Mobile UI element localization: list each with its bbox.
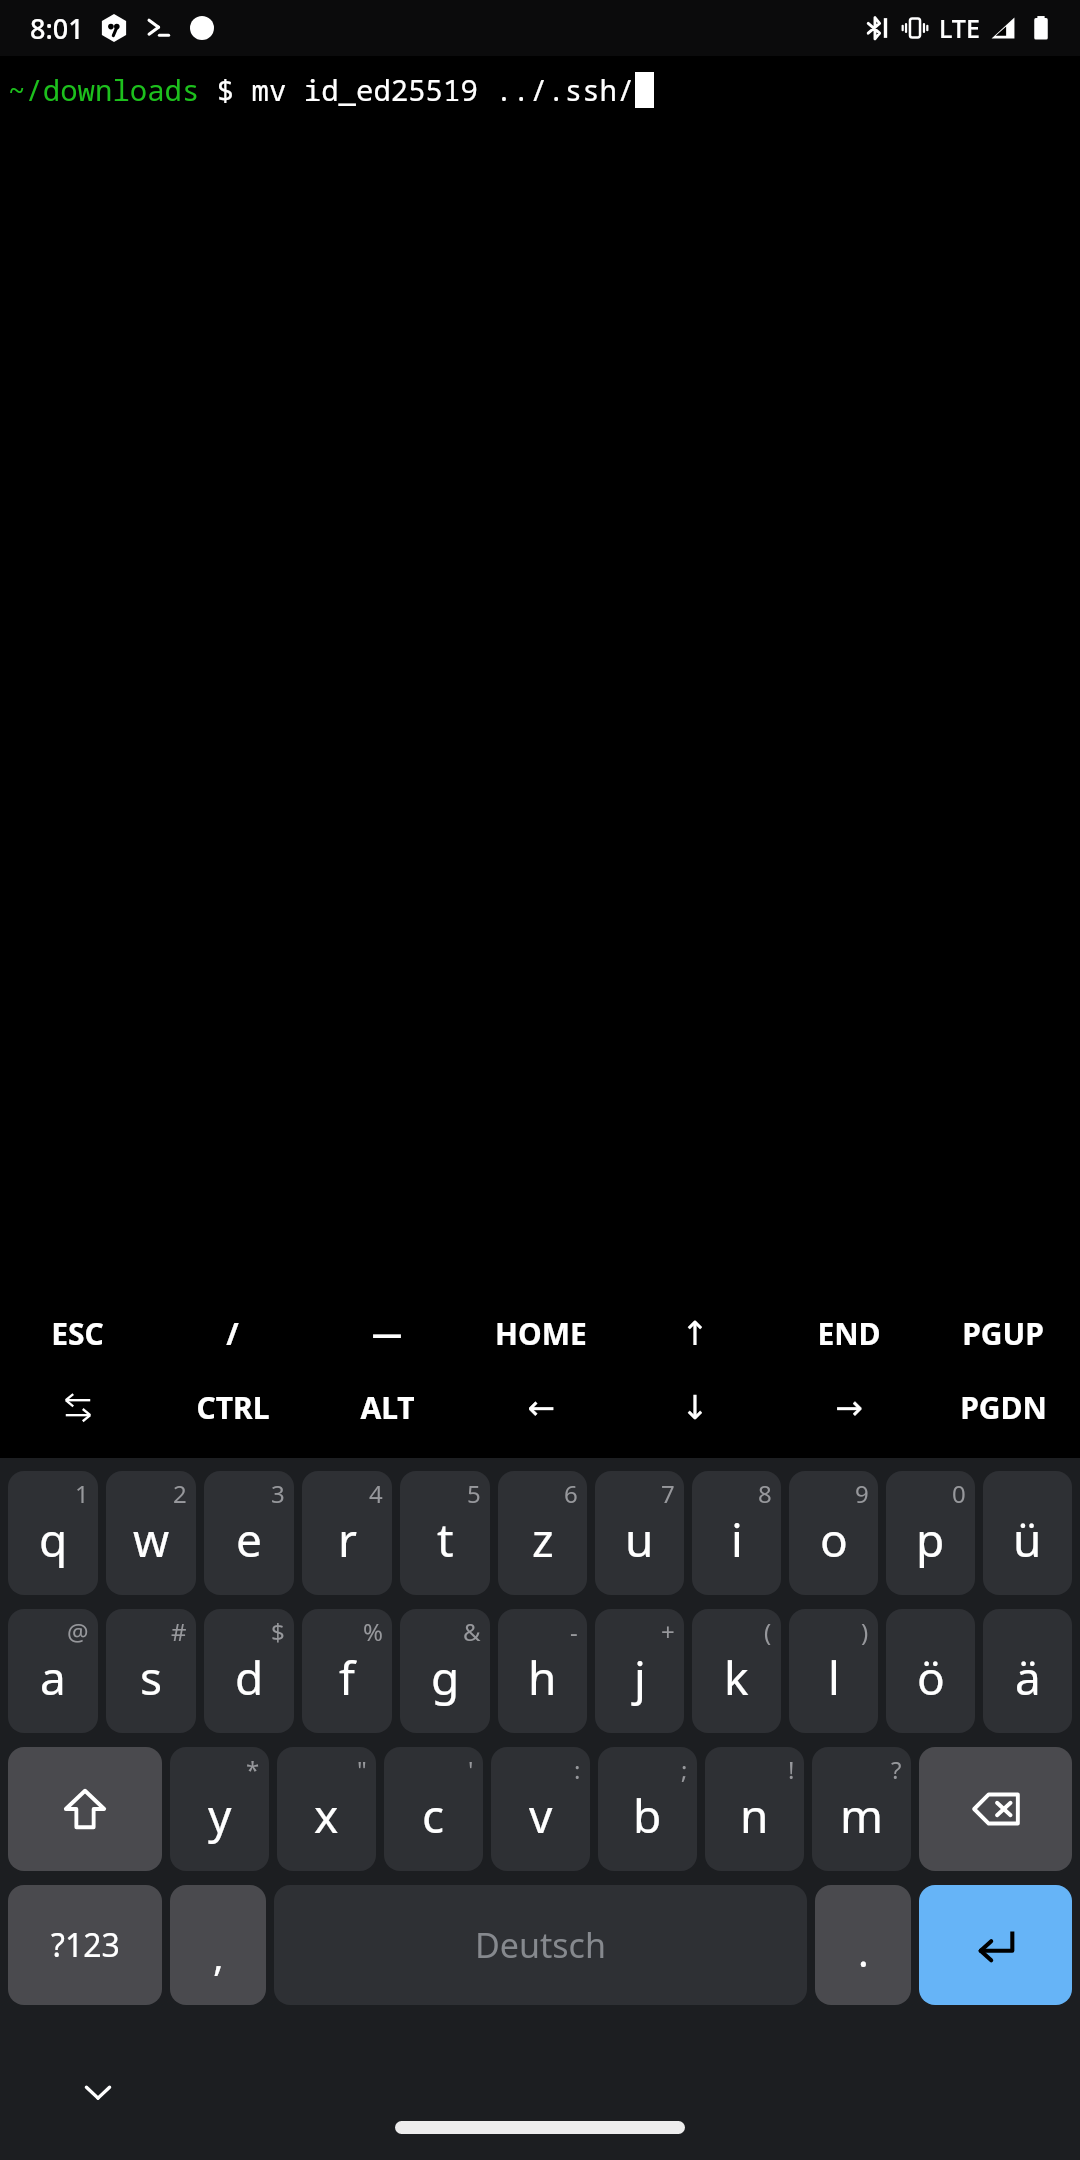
staticText: s	[140, 1646, 163, 1709]
button[interactable]: 0	[886, 1471, 975, 1595]
button[interactable]: ←	[464, 1370, 618, 1444]
button[interactable]: Backspace	[919, 1747, 1072, 1871]
button[interactable]: )	[789, 1609, 878, 1733]
button[interactable]: 8	[692, 1471, 781, 1595]
staticText: r	[338, 1508, 357, 1571]
staticText: v	[529, 1784, 553, 1847]
button[interactable]: HOME	[464, 1296, 618, 1370]
staticText: w	[133, 1508, 170, 1571]
button[interactable]: $	[204, 1609, 294, 1733]
staticText: 9	[855, 1477, 869, 1510]
staticText: #	[171, 1615, 187, 1648]
staticText: d	[235, 1646, 264, 1709]
button[interactable]: →	[772, 1370, 926, 1444]
staticText: &	[463, 1615, 481, 1648]
staticText: ä	[1015, 1646, 1041, 1709]
staticText: Deutsch	[475, 1922, 606, 1968]
button[interactable]: #	[106, 1609, 196, 1733]
staticText: 4	[369, 1477, 383, 1510]
button[interactable]: ?123	[8, 1885, 162, 2005]
button[interactable]: ?	[812, 1747, 911, 1871]
staticText: p	[916, 1508, 945, 1571]
button[interactable]: PGDN	[926, 1370, 1080, 1444]
button[interactable]: 4	[302, 1471, 392, 1595]
button[interactable]: 1	[8, 1471, 98, 1595]
button[interactable]: ü	[983, 1471, 1072, 1595]
button[interactable]: ESC	[0, 1296, 155, 1370]
staticText: h	[528, 1646, 557, 1709]
button[interactable]: ä	[983, 1609, 1072, 1733]
button[interactable]: (	[692, 1609, 781, 1733]
staticText: '	[468, 1753, 474, 1786]
button[interactable]: .	[815, 1885, 911, 2005]
button[interactable]: Tab	[0, 1370, 155, 1444]
staticText: u	[625, 1508, 654, 1571]
button[interactable]: %	[302, 1609, 392, 1733]
staticText: a	[40, 1646, 66, 1709]
staticText: PGUP	[962, 1313, 1044, 1354]
button[interactable]: ;	[598, 1747, 697, 1871]
button[interactable]: ↑	[618, 1296, 772, 1370]
button[interactable]: CTRL	[155, 1370, 310, 1444]
staticText: HOME	[495, 1313, 587, 1354]
staticText: +	[661, 1615, 675, 1648]
staticText: PGDN	[960, 1387, 1047, 1428]
button[interactable]: -	[498, 1609, 587, 1733]
staticText: →	[835, 1388, 863, 1426]
button[interactable]: +	[595, 1609, 684, 1733]
staticText: %	[363, 1615, 383, 1648]
button[interactable]: "	[277, 1747, 376, 1871]
staticText: j	[634, 1646, 646, 1709]
button[interactable]: Deutsch	[274, 1885, 807, 2005]
button[interactable]: Enter	[919, 1885, 1072, 2005]
staticText: ü	[1013, 1508, 1042, 1571]
staticText: .	[858, 1924, 869, 1978]
staticText: $	[271, 1615, 285, 1648]
staticText: 8:01	[30, 10, 84, 47]
button[interactable]: 7	[595, 1471, 684, 1595]
button[interactable]: —	[310, 1296, 464, 1370]
staticText: !	[788, 1753, 795, 1786]
button[interactable]: Shift	[8, 1747, 162, 1871]
button[interactable]: Hide keyboard	[68, 2062, 128, 2122]
staticText: f	[339, 1646, 355, 1709]
staticText: ALT	[360, 1387, 415, 1428]
staticText: ↑	[681, 1314, 709, 1352]
staticText: l	[828, 1646, 840, 1709]
staticText: (	[764, 1615, 772, 1648]
staticText: ESC	[51, 1313, 104, 1354]
staticText: m	[840, 1784, 884, 1847]
button[interactable]: END	[772, 1296, 926, 1370]
staticText: ←	[527, 1388, 555, 1426]
button[interactable]: 5	[400, 1471, 490, 1595]
button[interactable]: !	[705, 1747, 804, 1871]
button[interactable]: 3	[204, 1471, 294, 1595]
staticText: /	[226, 1313, 239, 1354]
staticText: 6	[564, 1477, 578, 1510]
button[interactable]: :	[491, 1747, 590, 1871]
button[interactable]: *	[170, 1747, 269, 1871]
button[interactable]: 9	[789, 1471, 878, 1595]
button[interactable]: 2	[106, 1471, 196, 1595]
staticText: k	[724, 1646, 749, 1709]
staticText: 7	[661, 1477, 675, 1510]
button[interactable]: '	[384, 1747, 483, 1871]
button[interactable]: ALT	[310, 1370, 464, 1444]
staticText: 8	[758, 1477, 772, 1510]
staticText: ~/downloads $ mv id_ed25519 ../.ssh/	[8, 70, 635, 109]
staticText: n	[740, 1784, 769, 1847]
button[interactable]: @	[8, 1609, 98, 1733]
button[interactable]: ↓	[618, 1370, 772, 1444]
button[interactable]: /	[155, 1296, 310, 1370]
button[interactable]: 6	[498, 1471, 587, 1595]
button[interactable]: PGUP	[926, 1296, 1080, 1370]
other: Tab	[61, 1390, 95, 1424]
staticText: 2	[173, 1477, 187, 1510]
button[interactable]: &	[400, 1609, 490, 1733]
staticText: o	[820, 1508, 848, 1571]
staticText: e	[236, 1508, 262, 1571]
staticText: t	[437, 1508, 454, 1571]
button[interactable]: ö	[886, 1609, 975, 1733]
staticText: 3	[271, 1477, 285, 1510]
button[interactable]: ,	[170, 1885, 266, 2005]
